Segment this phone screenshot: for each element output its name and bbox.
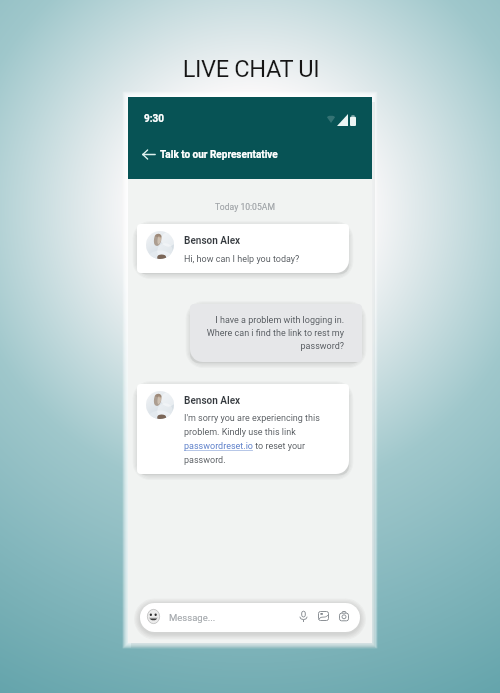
staticText: Message... <box>169 612 216 623</box>
staticText: password? <box>201 341 344 352</box>
staticText: Talk to our Representative <box>160 149 278 161</box>
staticText: Where can i find the link to rest my <box>201 328 344 339</box>
button[interactable]: Voice message <box>299 611 308 622</box>
staticText: 9:30 <box>144 113 165 125</box>
button[interactable]: Back <box>136 141 162 167</box>
button[interactable]: Benson Alex <box>137 224 349 273</box>
staticText: Benson Alex <box>184 235 241 247</box>
button[interactable]: Take photo <box>339 611 349 621</box>
staticText: Hi, how can I help you today? <box>184 254 300 265</box>
button[interactable]: Attach image <box>318 611 329 621</box>
staticText: password. <box>184 455 226 466</box>
staticText: I'm sorry you are experiencing this <box>184 413 320 424</box>
button[interactable]: Emoji <box>147 609 160 624</box>
staticText: problem. Kindly use this link <box>184 427 296 438</box>
staticText: passwordreset.io to reset your <box>184 441 306 452</box>
button[interactable]: Benson Alex <box>137 384 349 474</box>
button[interactable]: Emoji <box>140 603 360 632</box>
staticText: Today 10:05AM <box>123 202 367 212</box>
staticText: Benson Alex <box>184 395 241 407</box>
button[interactable]: I have a problem with logging in. <box>190 304 362 362</box>
staticText: LIVE CHAT UI <box>1 55 500 83</box>
staticText: I have a problem with logging in. <box>201 315 344 326</box>
